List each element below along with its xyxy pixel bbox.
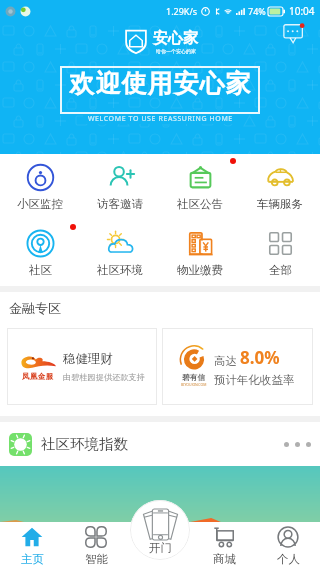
- staticText: 给你一个安心的家: [156, 48, 196, 54]
- staticText: 社区公告: [177, 197, 223, 211]
- staticText: 小区监控: [17, 197, 63, 211]
- button[interactable]: 物业缴费: [160, 220, 240, 286]
- button[interactable]: 社区公告: [160, 154, 240, 220]
- button[interactable]: 社区环境指数: [9, 422, 311, 466]
- staticText: 社区环境指数: [41, 435, 128, 453]
- staticText: 社区: [29, 263, 52, 277]
- staticText: 社区环境: [97, 263, 143, 277]
- staticText: 凤凰金服: [22, 372, 54, 381]
- staticText: 访客邀请: [97, 197, 143, 211]
- staticText: 安心家: [153, 29, 198, 48]
- staticText: 智能: [85, 552, 108, 566]
- button[interactable]: 全部: [240, 220, 320, 286]
- button[interactable]: 智能: [64, 522, 128, 569]
- button[interactable]: 个人: [256, 522, 320, 569]
- staticText: 主页: [21, 552, 44, 566]
- button[interactable]: 主页: [0, 522, 64, 569]
- staticText: 全部: [269, 263, 292, 277]
- button[interactable]: 碧有信: [162, 328, 313, 405]
- button[interactable]: 开门: [128, 507, 192, 562]
- staticText: BIYOUXIN.COM: [181, 382, 207, 387]
- button[interactable]: 凤凰金服: [7, 328, 157, 405]
- staticText: 车辆服务: [257, 197, 303, 211]
- staticText: 物业缴费: [177, 263, 223, 277]
- staticText: 预计年化收益率: [214, 373, 295, 387]
- staticText: 欢迎使用安心家: [69, 68, 251, 99]
- button[interactable]: Messages: [283, 23, 305, 45]
- staticText: 稳健理财: [63, 351, 113, 367]
- staticText: 10:04: [289, 4, 315, 18]
- staticText: 个人: [277, 552, 300, 566]
- button[interactable]: 社区环境: [80, 220, 160, 286]
- staticText: WELCOME TO USE REASSURING HOME: [88, 114, 233, 124]
- button[interactable]: 商城: [192, 522, 256, 569]
- staticText: 8.0%: [240, 346, 280, 369]
- staticText: 商城: [213, 552, 236, 566]
- button[interactable]: 访客邀请: [80, 154, 160, 220]
- staticText: 74%: [248, 5, 266, 17]
- button[interactable]: 小区监控: [0, 154, 80, 220]
- button[interactable]: 车辆服务: [240, 154, 320, 220]
- other: More: [284, 442, 311, 447]
- staticText: 开门: [149, 541, 172, 555]
- button[interactable]: 社区: [0, 220, 80, 286]
- staticText: 碧有信: [182, 373, 206, 382]
- staticText: 金融专区: [9, 300, 61, 316]
- staticText: 1.29K/s: [166, 5, 198, 17]
- staticText: 高达: [214, 353, 240, 369]
- staticText: 由碧桂园提供还款支持: [63, 372, 145, 382]
